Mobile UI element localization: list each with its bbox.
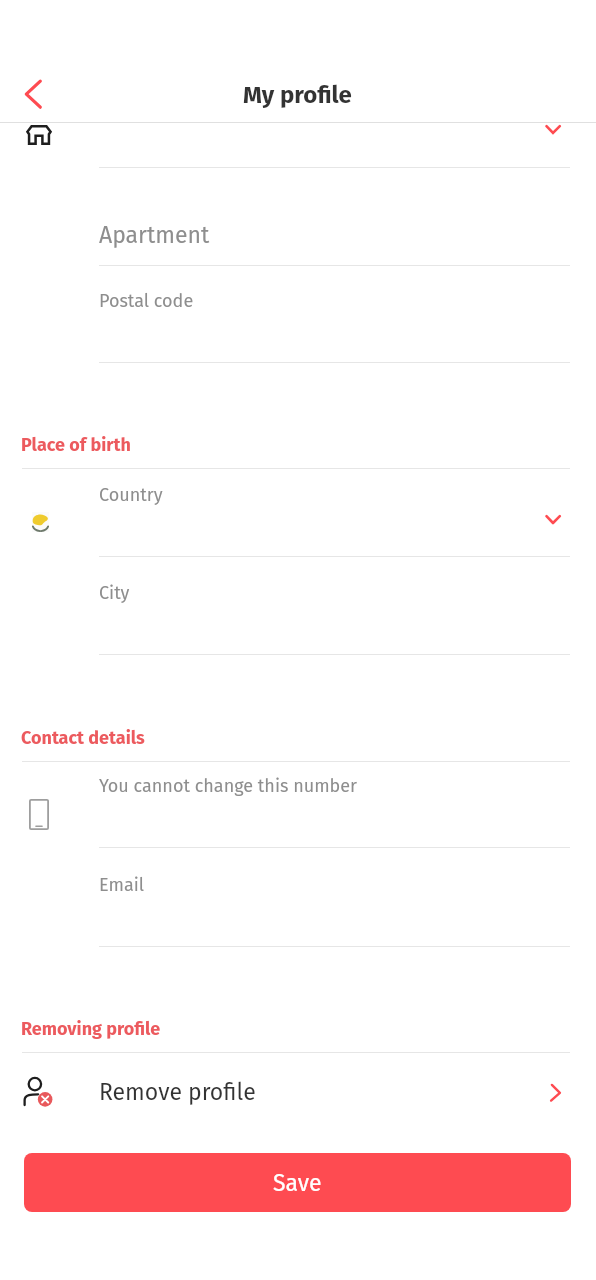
other: Expand xyxy=(537,117,569,149)
staticText: Save xyxy=(273,1169,322,1197)
staticText: Remove profile xyxy=(99,1078,256,1106)
staticText: Removing profile xyxy=(21,1018,161,1040)
staticText: My profile xyxy=(243,81,352,110)
other: Expand xyxy=(537,507,569,539)
other: Open xyxy=(540,1073,572,1105)
staticText: Place of birth xyxy=(21,434,131,456)
button[interactable]: Back xyxy=(9,62,57,110)
staticText: You cannot change this number xyxy=(99,775,358,797)
button[interactable]: Remove profile xyxy=(0,1053,596,1129)
staticText: Contact details xyxy=(21,727,145,749)
button[interactable]: Save xyxy=(24,1153,571,1212)
staticText: Country xyxy=(99,484,163,506)
staticText: Email xyxy=(99,874,145,896)
staticText: Apartment xyxy=(99,221,210,249)
staticText: Postal code xyxy=(99,290,194,312)
staticText: City xyxy=(99,582,130,604)
